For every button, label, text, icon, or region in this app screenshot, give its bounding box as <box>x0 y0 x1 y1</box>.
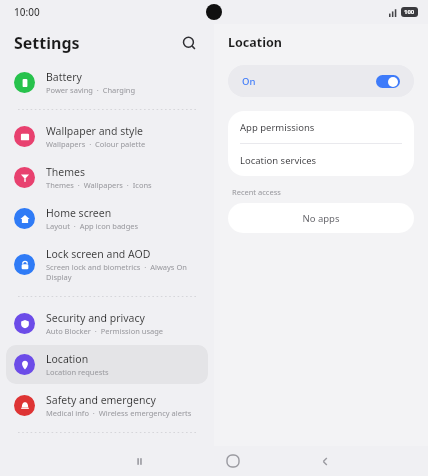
button[interactable]: Search settings <box>174 28 204 58</box>
staticText: Security and privacy <box>46 311 145 325</box>
staticText: Themes · Wallpapers · Icons <box>46 180 152 190</box>
staticText: Safety and emergency <box>46 393 156 407</box>
button[interactable]: Themes <box>6 158 208 197</box>
staticText: No apps <box>302 212 340 225</box>
button[interactable]: Wallpaper and style <box>6 117 208 156</box>
staticText: Lock screen and AOD <box>46 247 151 261</box>
button[interactable]: Battery <box>6 63 208 102</box>
staticText: Recent access <box>232 187 281 197</box>
staticText: Layout · App icon badges <box>46 221 139 231</box>
staticText: Location requests <box>46 367 109 377</box>
button[interactable]: Safety and emergency <box>6 386 208 425</box>
staticText: Auto Blocker · Permission usage <box>46 326 164 336</box>
staticText: Location <box>228 34 282 51</box>
staticText: Screen lock and biometrics · Always On D… <box>46 262 202 282</box>
staticText: On <box>242 75 256 88</box>
button[interactable]: Lock screen and AOD <box>6 240 208 289</box>
staticText: Wallpaper and style <box>46 124 144 138</box>
staticText: Settings <box>14 32 80 54</box>
staticText: Wallpapers · Colour palette <box>46 139 146 149</box>
staticText: Power saving · Charging <box>46 85 136 95</box>
staticText: Location <box>46 352 89 366</box>
button[interactable]: Home screen <box>6 199 208 238</box>
button[interactable]: Home <box>186 446 279 476</box>
button[interactable]: Location <box>6 345 208 384</box>
button[interactable]: Back <box>279 446 372 476</box>
staticText: 10:00 <box>14 5 40 19</box>
button[interactable]: Security and privacy <box>6 304 208 343</box>
staticText: 100 <box>404 8 415 16</box>
staticText: Home screen <box>46 206 112 220</box>
button[interactable]: App permissions <box>228 111 414 143</box>
button[interactable]: On <box>228 65 414 97</box>
staticText: Battery <box>46 70 82 84</box>
button[interactable]: Location services <box>228 144 414 176</box>
staticText: App permissions <box>240 121 315 134</box>
staticText: Medical info · Wireless emergency alerts <box>46 408 192 418</box>
staticText: Location services <box>240 154 317 167</box>
staticText: Themes <box>46 165 86 179</box>
button[interactable]: Recent apps <box>93 446 186 476</box>
